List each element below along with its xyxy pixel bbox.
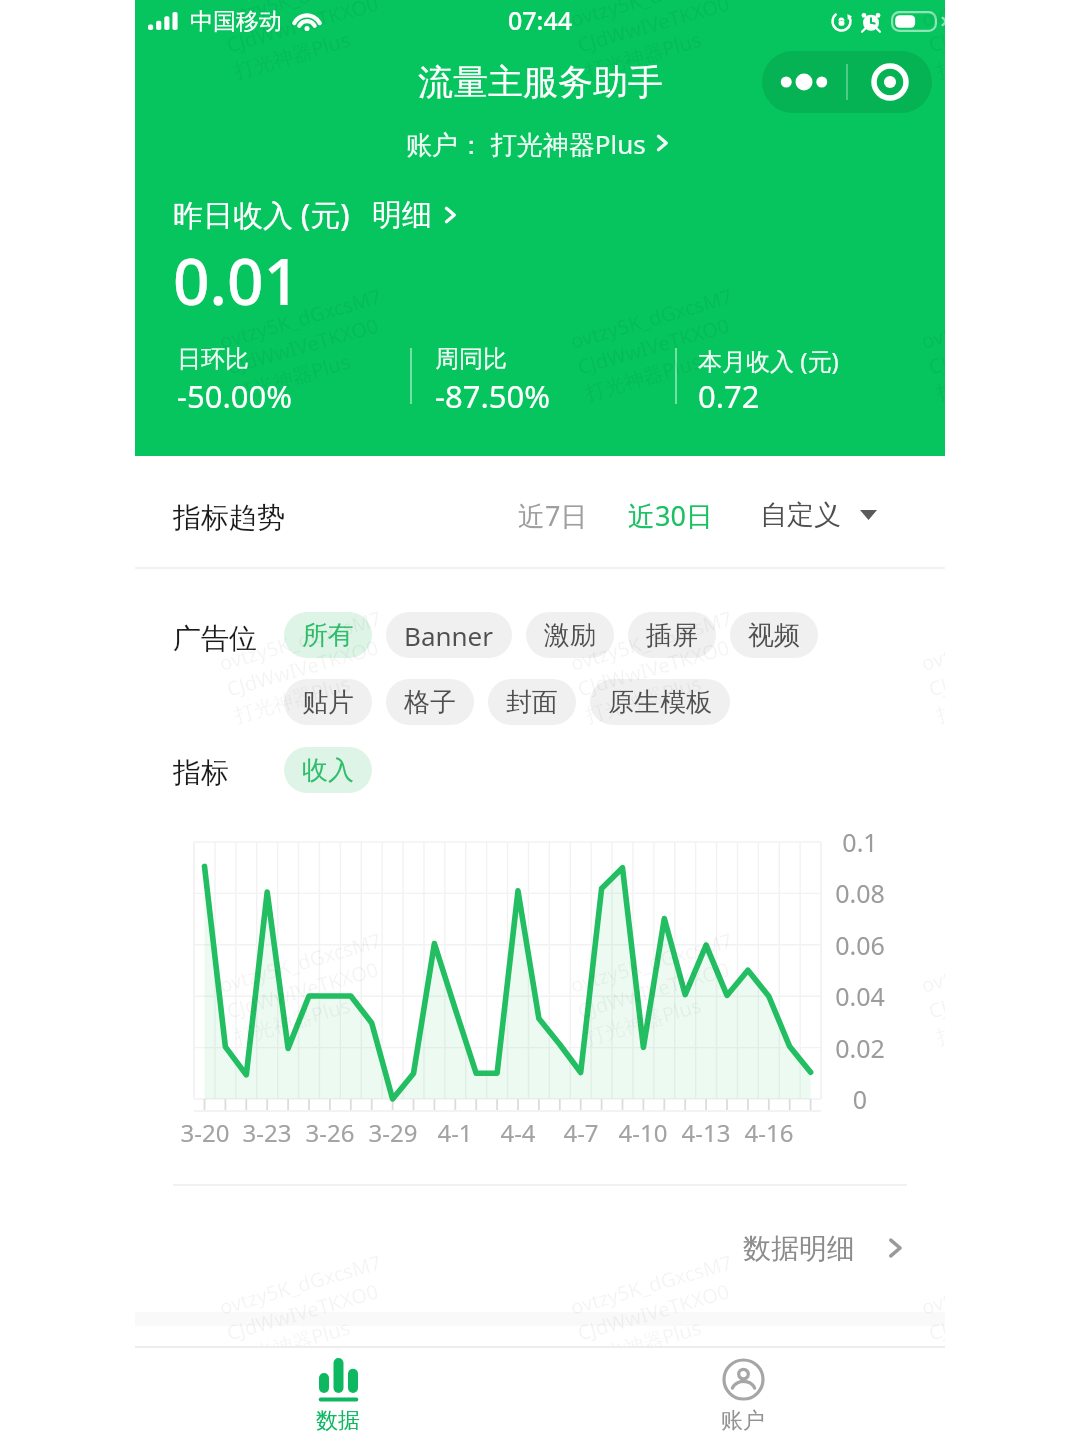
button[interactable]: 近7日 [504,484,602,546]
staticText: 3-29 [348,1116,438,1149]
button[interactable]: 昨日收入 (元) [173,194,462,235]
staticText: -87.50% [435,375,550,417]
staticText: 自定义 [760,498,841,532]
staticText: 近7日 [518,497,588,534]
button[interactable]: More options [762,51,932,113]
staticText: 广告位 [173,621,257,656]
staticText: 原生模板 [608,686,712,719]
button[interactable]: 账户 [540,1348,945,1439]
staticText: ovtzy5K_dGxcsM7 [216,282,385,355]
other: More options [762,51,846,113]
staticText: ovtzy5K_dGxcsM7 [216,604,385,677]
staticText: 流量主服务助手 [418,60,663,104]
staticText: ovtzy5K_dGxcsM7 [567,604,736,677]
staticText: CJdWwIVeTKXO0 [223,311,382,381]
staticText: 数据明细 [743,1231,855,1266]
staticText: 4-1 [410,1116,500,1149]
staticText: 数据 [316,1407,360,1435]
staticText: 3-20 [160,1116,250,1149]
button[interactable]: 收入 [284,747,372,793]
staticText: CJdWwIVeTKXO0 [223,633,382,703]
staticText: CJdWwIVeTKXO0 [574,955,733,1025]
button[interactable]: Banner [386,612,512,658]
staticText: 指标 [173,755,229,790]
staticText: 近30日 [628,497,713,534]
staticText: 日环比 [177,344,249,374]
staticText: 打光神器Plus [231,26,354,85]
staticText: 插屏 [646,619,698,652]
staticText: 打光神器Plus [582,1314,705,1373]
button[interactable]: 数据明细 [135,1205,909,1291]
button[interactable]: 近30日 [614,484,727,546]
staticText: 4-10 [598,1116,688,1149]
staticText: CJdWwIVeTKXO0 [223,1277,382,1347]
staticText: 4-7 [536,1116,626,1149]
staticText: 打光神器Plus [933,992,945,1051]
staticText: 0.06 [800,928,920,962]
staticText: ovtzy5K_dGxcsM7 [918,0,945,33]
staticText: 打光神器Plus [231,992,354,1051]
staticText: 账户： 打光神器Plus [406,126,646,160]
staticText: 0.1 [800,825,920,859]
staticText: 0 [800,1082,920,1116]
button[interactable]: 激励 [526,612,614,658]
staticText: 打光神器Plus [933,26,945,85]
button[interactable]: 所有 [284,612,372,658]
staticText: 贴片 [302,686,354,719]
staticText: CJdWwIVeTKXO0 [574,1277,733,1347]
staticText: 中国移动 [190,7,282,36]
button[interactable]: 数据 [135,1348,540,1439]
staticText: 视频 [748,619,800,652]
staticText: ovtzy5K_dGxcsM7 [216,926,385,999]
staticText: 昨日收入 (元) [173,194,350,235]
staticText: ovtzy5K_dGxcsM7 [567,926,736,999]
staticText: -50.00% [177,375,292,417]
button[interactable]: 贴片 [284,679,372,725]
staticText: ovtzy5K_dGxcsM7 [567,1248,736,1321]
staticText: 打光神器Plus [582,670,705,729]
staticText: 3-23 [222,1116,312,1149]
staticText: 账户 [721,1407,765,1435]
staticText: 指标趋势 [173,500,285,535]
staticText: 0.08 [800,876,920,910]
staticText: 明细 [372,196,432,234]
staticText: 所有 [302,619,354,652]
staticText: CJdWwIVeTKXO0 [925,0,945,59]
button[interactable]: 封面 [488,679,576,725]
staticText: 4-13 [661,1116,751,1149]
staticText: CJdWwIVeTKXO0 [223,955,382,1025]
staticText: 打光神器Plus [933,1314,945,1373]
button[interactable]: 账户： 打光神器Plus [406,126,674,160]
staticText: CJdWwIVeTKXO0 [925,1277,945,1347]
button[interactable]: 原生模板 [590,679,730,725]
staticText: 4-16 [724,1116,814,1149]
staticText: ovtzy5K_dGxcsM7 [567,0,736,33]
staticText: Banner [404,618,494,653]
staticText: 4-4 [473,1116,563,1149]
button[interactable]: 视频 [730,612,818,658]
button[interactable]: 自定义 [746,484,891,546]
staticText: ovtzy5K_dGxcsM7 [216,1248,385,1321]
staticText: CJdWwIVeTKXO0 [223,0,382,59]
staticText: 打光神器Plus [231,1314,354,1373]
staticText: 封面 [506,686,558,719]
button[interactable]: 格子 [386,679,474,725]
staticText: 收入 [302,754,354,787]
staticText: 格子 [404,686,456,719]
staticText: 0.72 [698,375,760,417]
staticText: 打光神器Plus [231,670,354,729]
other: Close mini program [848,51,932,113]
staticText: 打光神器Plus [933,670,945,729]
button[interactable]: 插屏 [628,612,716,658]
staticText: 周同比 [435,344,507,374]
staticText: 打光神器Plus [231,348,354,407]
